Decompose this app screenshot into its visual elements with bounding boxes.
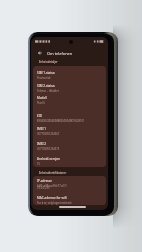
staticText: For å se, velg lagret nettverk bbox=[37, 201, 72, 205]
staticText: 357703051234575 bbox=[37, 147, 60, 151]
button[interactable]: Modell bbox=[33, 94, 106, 112]
staticText: Enhetsidentifikatorer bbox=[39, 171, 67, 175]
staticText: Android-versjon bbox=[37, 157, 60, 161]
button[interactable]: MAC-adresse for wifi bbox=[33, 194, 106, 205]
staticText: 15 bbox=[37, 162, 40, 166]
staticText: MAC-adresse for wifi bbox=[37, 196, 67, 200]
staticText: 89049032004008882600049873628101 bbox=[37, 119, 85, 123]
staticText: Telenor – tilkoblet bbox=[37, 89, 59, 93]
staticText: Enhetsdetaljer bbox=[39, 60, 58, 64]
staticText: SIM 2-status bbox=[37, 84, 55, 88]
button[interactable]: EID bbox=[33, 112, 106, 125]
staticText: fe80::a08a:acff:fe77:a1f1 10.0.0.233 bbox=[37, 184, 67, 190]
staticText: Modell bbox=[37, 96, 47, 100]
button[interactable]: IMEI 1 bbox=[33, 125, 106, 140]
staticText: Pixel 6 bbox=[37, 101, 45, 105]
staticText: SIM 1-status bbox=[37, 71, 55, 75]
button[interactable]: IMEI 2 bbox=[33, 140, 106, 155]
staticText: IMEI 1 bbox=[37, 127, 47, 131]
button[interactable]: SIM 1-status bbox=[33, 69, 106, 82]
staticText: IP-adresse bbox=[37, 179, 53, 183]
button[interactable]: IP-adresse bbox=[33, 177, 106, 194]
staticText: EID bbox=[37, 114, 42, 118]
staticText: Provisorisk bbox=[37, 76, 51, 80]
staticText: IMEI 2 bbox=[37, 142, 47, 146]
button[interactable]: SIM 2-status bbox=[33, 82, 106, 95]
staticText: 357703051234567 bbox=[37, 132, 60, 136]
button[interactable]: Back bbox=[36, 49, 43, 56]
button[interactable]: Android-versjon bbox=[33, 155, 106, 167]
staticText: Om telefonen bbox=[47, 51, 73, 56]
